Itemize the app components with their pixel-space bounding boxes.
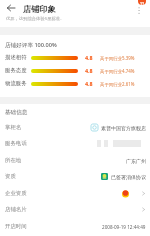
staticText: 企业资质 [5,190,27,197]
staticText: 店铺好评率 100.00% [5,41,57,49]
staticText: 已签署消保协议 [111,174,146,180]
staticText: 描述相符 [5,54,27,61]
button[interactable]: 开店时间 [5,218,146,235]
button[interactable]: 物流服务 [5,77,145,90]
button[interactable]: 企业资质 [5,185,146,202]
button[interactable]: 掌柜名 [5,119,146,136]
staticText: 物流服务 [5,80,27,87]
button[interactable]: Back [4,1,18,15]
staticText: 广东广州 [126,158,146,164]
staticText: 所在地 [5,157,22,164]
staticText: 高于同行业2.61% [100,81,135,87]
button[interactable]: 资质 [5,168,146,185]
staticText: 服务态度 [5,67,27,74]
staticText: 高于同行业5.39% [100,55,135,61]
button[interactable]: 店铺名片 [5,201,146,218]
staticText: 2008-09-19 12:44:49 [102,224,146,230]
staticText: 高于同行业4.74% [100,68,135,74]
staticText: 店铺印象 [23,4,56,14]
button[interactable]: 所在地 [5,152,146,169]
staticText: 基础信息 [5,109,28,116]
staticText: 11 [140,1,145,5]
staticText: 4.8 [85,80,93,87]
button[interactable]: 服务态度 [5,64,145,77]
staticText: 4.8 [85,54,93,61]
button[interactable]: 服务电话 [5,135,146,152]
button[interactable]: More options [135,6,144,15]
staticText: 素普中国官方旗舰店 [101,125,146,131]
staticText: 店铺名片 [5,206,27,213]
staticText: 服务电话 [5,140,27,147]
staticText: 资质 [5,173,16,180]
staticText: 优异，达到综合体验5星标准。 [6,15,65,21]
staticText: 4.8 [85,67,93,74]
staticText: 掌柜名 [5,124,22,131]
button[interactable]: 描述相符 [5,51,145,64]
staticText: 开店时间 [5,223,27,230]
